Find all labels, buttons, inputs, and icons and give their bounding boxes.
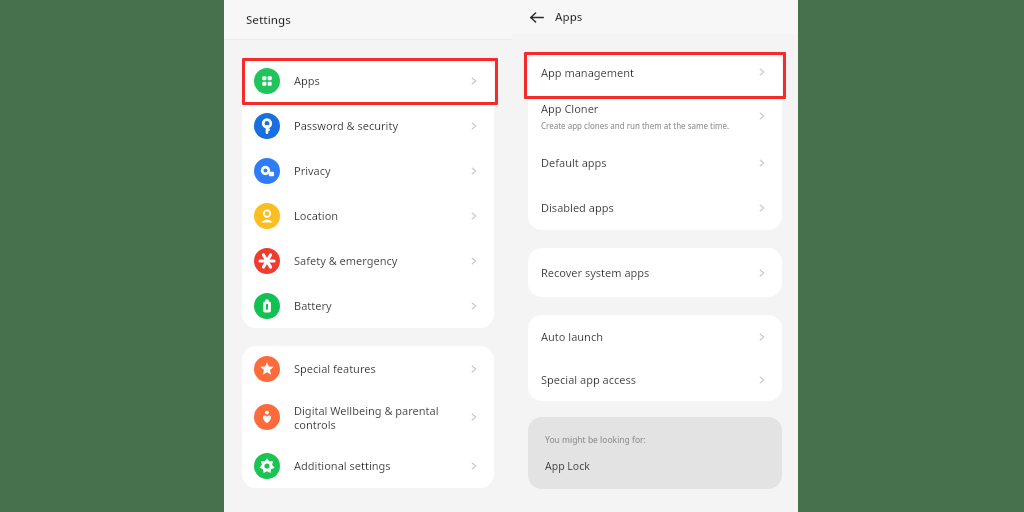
button[interactable]: Special features	[242, 346, 494, 391]
staticText: Location	[294, 208, 467, 223]
staticText: Auto launch	[541, 329, 603, 344]
button[interactable]: Apps	[242, 58, 494, 103]
staticText: You might be looking for:	[545, 434, 646, 446]
button[interactable]: Password & security	[242, 103, 494, 148]
staticText: Battery	[294, 298, 467, 313]
button[interactable]: Battery	[242, 283, 494, 328]
staticText: Apps	[294, 73, 467, 88]
staticText: Password & security	[294, 118, 467, 133]
button[interactable]: Additional settings	[242, 443, 494, 488]
button[interactable]: Special app access	[528, 358, 782, 401]
button[interactable]: You might be looking for:	[528, 417, 782, 489]
staticText: Default apps	[541, 155, 607, 170]
button[interactable]: App Cloner	[528, 92, 782, 140]
staticText: Apps	[555, 9, 583, 25]
staticText: Safety & emergency	[294, 253, 467, 268]
staticText: App management	[541, 65, 635, 80]
staticText: Create app clones and run them at the sa…	[541, 120, 730, 131]
staticText: Special features	[294, 361, 467, 376]
button[interactable]: Safety & emergency	[242, 238, 494, 283]
button[interactable]: Auto launch	[528, 315, 782, 358]
staticText: Disabled apps	[541, 200, 614, 215]
staticText: Recover system apps	[541, 265, 650, 280]
staticText: Additional settings	[294, 458, 467, 473]
staticText: Digital Wellbeing & parental controls	[294, 403, 467, 432]
staticText: Special app access	[541, 372, 637, 387]
staticText: Settings	[246, 12, 291, 28]
button[interactable]: Back	[524, 5, 548, 29]
button[interactable]: Privacy	[242, 148, 494, 193]
staticText: Privacy	[294, 163, 467, 178]
button[interactable]: Disabled apps	[528, 185, 782, 230]
button[interactable]: Digital Wellbeing & parental controls	[242, 391, 494, 443]
button[interactable]: Default apps	[528, 140, 782, 185]
button[interactable]: App management	[528, 52, 782, 92]
button[interactable]: Location	[242, 193, 494, 238]
staticText: App Cloner	[541, 101, 599, 116]
button[interactable]: Recover system apps	[528, 248, 782, 297]
staticText: App Lock	[545, 459, 590, 473]
